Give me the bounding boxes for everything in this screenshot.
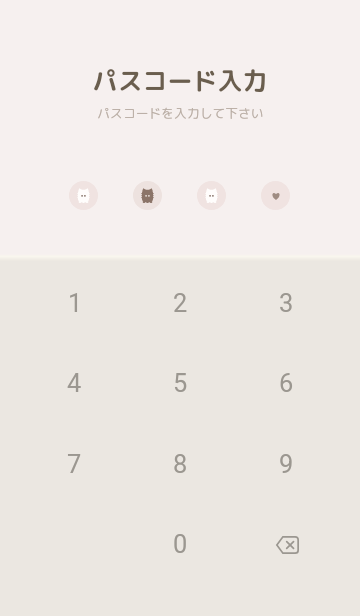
staticText: パスコードを入力して下さい: [97, 104, 264, 122]
button[interactable]: Passcode digit 2: [133, 181, 162, 210]
button[interactable]: 0: [130, 509, 230, 579]
staticText: 3: [279, 288, 294, 318]
button[interactable]: 7: [24, 429, 124, 499]
staticText: 7: [67, 449, 82, 479]
staticText: 6: [279, 368, 294, 398]
staticText: 1: [68, 288, 83, 318]
staticText: 9: [279, 449, 294, 479]
button[interactable]: 8: [130, 429, 230, 499]
staticText: 5: [173, 368, 188, 398]
button[interactable]: 2: [130, 268, 230, 338]
button[interactable]: 3: [236, 268, 336, 338]
button[interactable]: Delete: [236, 509, 336, 579]
staticText: 8: [173, 449, 188, 479]
button[interactable]: Passcode digit 4: [261, 181, 290, 210]
button[interactable]: 1: [24, 268, 124, 338]
staticText: パスコード入力: [92, 63, 268, 98]
button[interactable]: 9: [236, 429, 336, 499]
button[interactable]: 5: [130, 348, 230, 418]
button[interactable]: Passcode digit 3: [197, 181, 226, 210]
staticText: 4: [67, 368, 82, 398]
button[interactable]: 4: [24, 348, 124, 418]
staticText: 0: [173, 529, 188, 559]
button[interactable]: 6: [236, 348, 336, 418]
button[interactable]: Passcode digit 1: [69, 181, 98, 210]
staticText: 2: [173, 288, 188, 318]
